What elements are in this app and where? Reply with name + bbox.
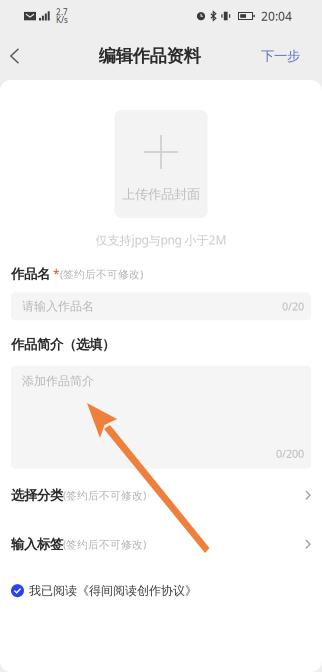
staticText: 请输入作品名: [22, 299, 94, 314]
staticText: 我已阅读《得间阅读创作协议》: [29, 583, 197, 598]
button[interactable]: 下一步: [243, 36, 322, 76]
staticText: 编辑作品资料: [98, 45, 200, 67]
staticText: 输入标签: [11, 536, 63, 552]
staticText: (签约后不可修改): [63, 537, 146, 551]
staticText: K/s: [56, 14, 68, 25]
staticText: 0/20: [282, 299, 304, 313]
button[interactable]: 返回: [0, 36, 35, 76]
staticText: *: [50, 266, 60, 282]
button[interactable]: 上传作品封面: [114, 110, 207, 218]
button[interactable]: 输入标签: [11, 520, 311, 569]
staticText: (签约后不可修改): [63, 488, 146, 502]
staticText: 0/200: [276, 446, 304, 461]
staticText: 下一步: [261, 48, 300, 64]
staticText: 上传作品封面: [122, 186, 200, 202]
staticText: (签约后不可修改): [60, 267, 143, 281]
staticText: 仅支持jpg与png 小于2M: [95, 232, 226, 248]
staticText: 作品简介（选填）: [11, 336, 115, 353]
staticText: 作品名: [11, 266, 50, 282]
button[interactable]: 选择分类: [11, 471, 311, 520]
staticText: 2.7: [56, 7, 68, 17]
staticText: 选择分类: [11, 487, 63, 503]
staticText: 添加作品简介: [22, 374, 94, 388]
staticText: 20:04: [261, 8, 292, 24]
button[interactable]: 我已阅读《得间阅读创作协议》: [11, 580, 311, 602]
